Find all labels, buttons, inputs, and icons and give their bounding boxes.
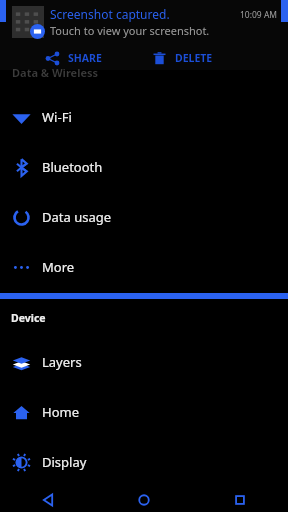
button[interactable]: Bluetooth [0, 142, 288, 192]
button[interactable]: Display [0, 437, 288, 487]
button[interactable]: Home [96, 487, 192, 512]
staticText: Layers [42, 353, 82, 371]
button[interactable]: Data usage [0, 192, 288, 242]
staticText: 10:09 AM [240, 9, 278, 21]
staticText: Touch to view your screenshot. [50, 23, 210, 38]
staticText: Device [11, 311, 46, 325]
staticText: Data usage [42, 208, 112, 226]
button[interactable]: Back [0, 487, 96, 512]
staticText: Home [42, 403, 79, 421]
button[interactable]: Home [0, 387, 288, 437]
staticText: Data & Wireless [12, 65, 99, 80]
button[interactable]: Wi-Fi [0, 92, 288, 142]
staticText: Wi-Fi [42, 108, 72, 126]
staticText: More [42, 258, 75, 276]
staticText: DELETE [175, 51, 213, 65]
button[interactable]: Screenshot captured. [0, 0, 288, 70]
button[interactable]: Recent apps [192, 487, 288, 512]
button[interactable]: More [0, 242, 288, 292]
button[interactable]: DELETE [152, 47, 213, 69]
staticText: Bluetooth [42, 158, 103, 176]
button[interactable]: SHARE [45, 47, 102, 69]
staticText: Screenshot captured. [50, 6, 170, 22]
button[interactable]: Data & Wireless [0, 70, 288, 92]
staticText: Display [42, 453, 87, 471]
button[interactable]: Layers [0, 337, 288, 387]
staticText: SHARE [68, 51, 102, 65]
